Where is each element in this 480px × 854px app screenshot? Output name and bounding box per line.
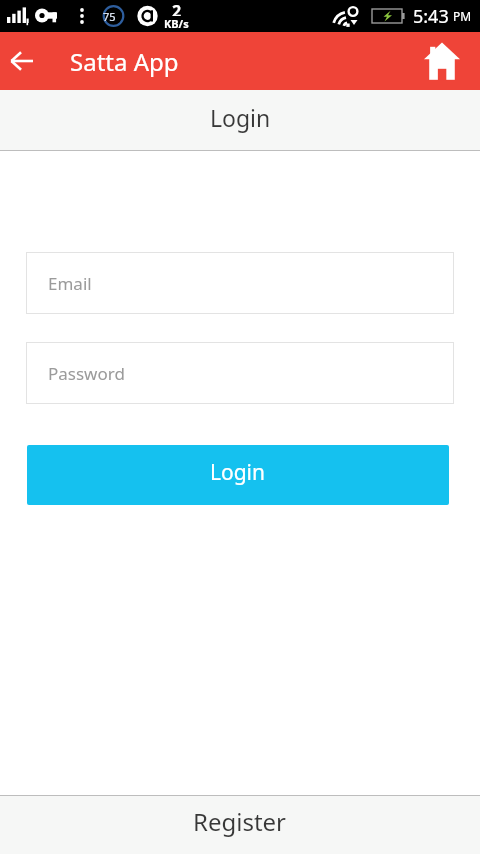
- staticText: Email: [48, 272, 92, 295]
- staticText: Satta App: [70, 45, 179, 78]
- button[interactable]: Login: [27, 445, 449, 505]
- button[interactable]: Password: [26, 342, 454, 404]
- button[interactable]: Back: [0, 32, 44, 90]
- button[interactable]: Register: [0, 796, 480, 854]
- button[interactable]: Home: [422, 32, 480, 90]
- staticText: KB/s: [164, 16, 189, 28]
- button[interactable]: Email: [26, 252, 454, 314]
- staticText: 5:43: [413, 4, 449, 29]
- staticText: PM: [453, 8, 472, 24]
- staticText: Login: [210, 458, 266, 487]
- staticText: Register: [193, 805, 287, 838]
- staticText: 75: [103, 9, 124, 24]
- staticText: Password: [48, 362, 125, 385]
- staticText: Login: [210, 102, 271, 133]
- staticText: 2: [172, 0, 182, 16]
